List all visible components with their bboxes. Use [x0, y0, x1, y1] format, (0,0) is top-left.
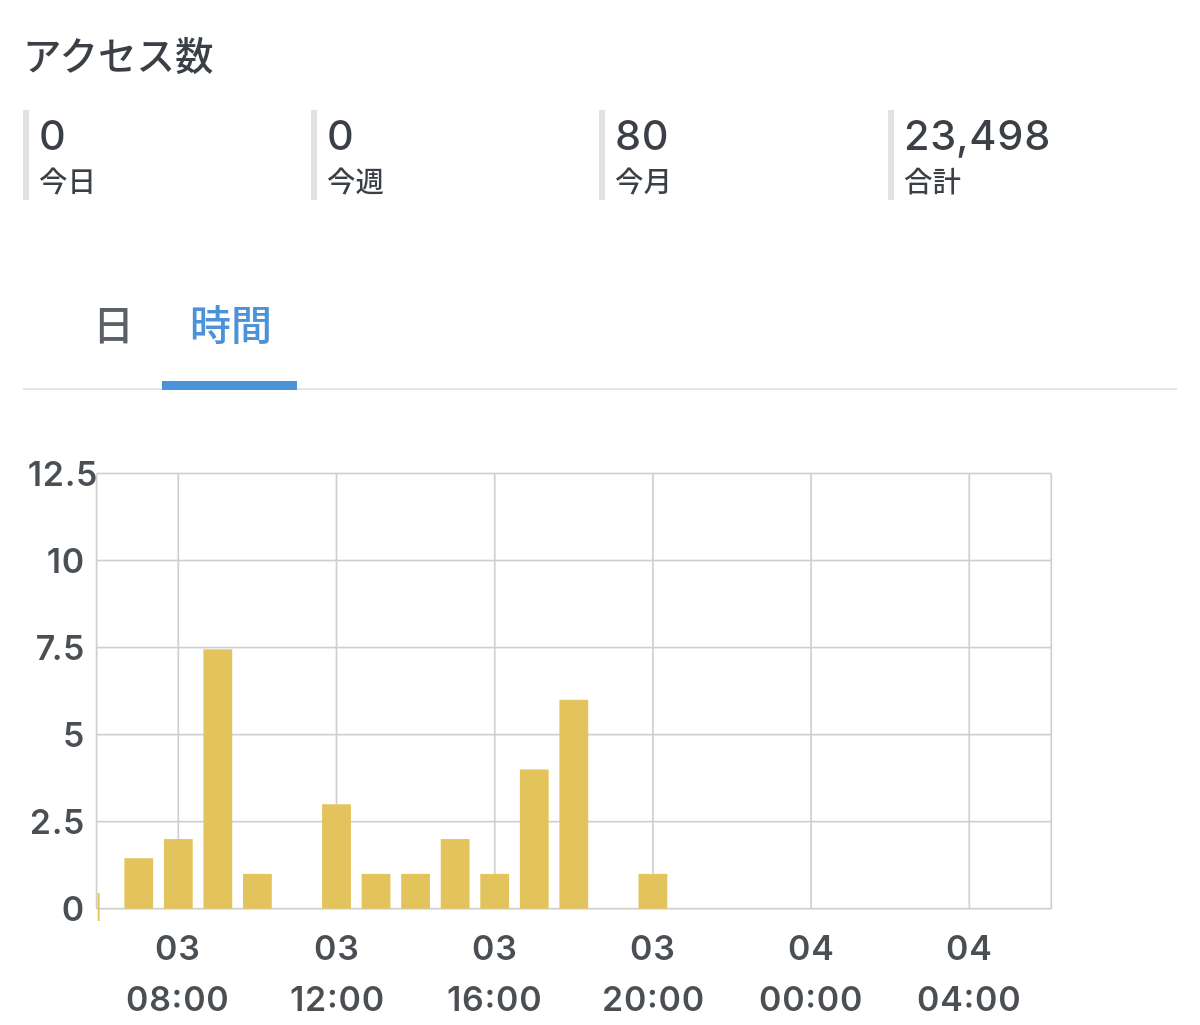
- staticText: 03: [314, 927, 360, 968]
- staticText: 今月: [615, 159, 673, 199]
- staticText: 12:00: [290, 978, 385, 1019]
- staticText: 2.5: [29, 801, 85, 842]
- staticText: 20:00: [602, 978, 705, 1019]
- staticText: 合計: [904, 159, 962, 199]
- staticText: 04: [946, 927, 993, 968]
- staticText: 23,498: [904, 110, 1051, 160]
- button[interactable]: 0: [311, 110, 599, 200]
- staticText: 03: [472, 927, 518, 968]
- staticText: 03: [630, 927, 676, 968]
- staticText: 80: [615, 110, 670, 160]
- button[interactable]: 23,498: [888, 110, 1177, 200]
- staticText: 時間: [190, 292, 272, 351]
- button[interactable]: 0: [23, 110, 311, 200]
- staticText: 0: [327, 110, 355, 160]
- staticText: 00:00: [759, 978, 864, 1019]
- staticText: 今週: [327, 159, 385, 199]
- staticText: 5: [62, 714, 85, 755]
- button[interactable]: 時間: [163, 282, 298, 390]
- staticText: 03: [155, 927, 201, 968]
- button[interactable]: 日: [64, 282, 163, 390]
- staticText: 7.5: [35, 627, 85, 668]
- staticText: 08:00: [126, 978, 230, 1019]
- staticText: 0: [39, 110, 67, 160]
- staticText: 10: [46, 540, 85, 581]
- staticText: アクセス数: [23, 25, 214, 81]
- button[interactable]: 80: [599, 110, 888, 200]
- staticText: 12.5: [27, 453, 98, 494]
- staticText: 16:00: [447, 978, 543, 1019]
- staticText: 日: [93, 292, 134, 351]
- staticText: 04: [788, 927, 835, 968]
- staticText: 04:00: [917, 978, 1022, 1019]
- staticText: 今日: [39, 159, 97, 199]
- staticText: 0: [61, 888, 85, 929]
